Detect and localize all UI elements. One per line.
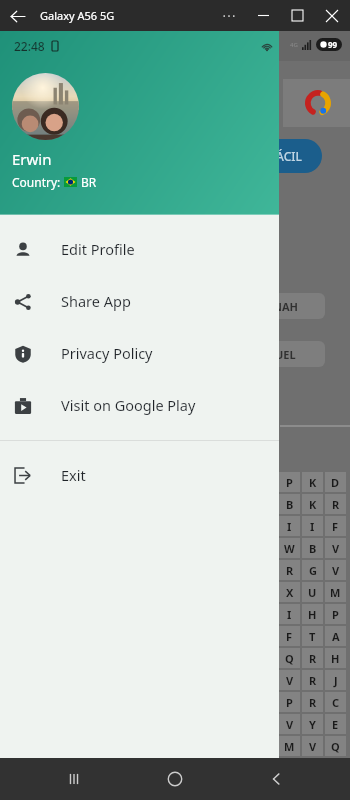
- staticText: 4G: [290, 41, 298, 49]
- button[interactable]: B: [279, 758, 300, 778]
- button[interactable]: Home: [147, 758, 203, 800]
- staticText: I: [287, 607, 292, 622]
- button[interactable]: H: [325, 648, 346, 668]
- button[interactable]: M: [325, 582, 346, 602]
- staticText: H: [331, 651, 340, 666]
- button[interactable]: Y: [302, 714, 323, 734]
- button[interactable]: V: [279, 714, 300, 734]
- staticText: B: [309, 541, 317, 556]
- button[interactable]: M: [279, 736, 300, 756]
- button[interactable]: [283, 79, 350, 127]
- button[interactable]: A: [325, 626, 346, 646]
- button[interactable]: I: [279, 604, 300, 624]
- button[interactable]: B: [302, 538, 323, 558]
- button[interactable]: UEL: [245, 341, 325, 367]
- button[interactable]: B: [279, 494, 300, 514]
- button[interactable]: Minimize: [246, 0, 280, 31]
- staticText: T: [309, 629, 316, 644]
- button[interactable]: K: [302, 472, 323, 492]
- button[interactable]: T: [302, 626, 323, 646]
- staticText: M: [284, 739, 295, 754]
- button[interactable]: Share App: [0, 275, 279, 327]
- staticText: Share App: [61, 291, 131, 311]
- staticText: P: [332, 607, 339, 622]
- button[interactable]: C: [325, 692, 346, 712]
- button[interactable]: R: [279, 560, 300, 580]
- button[interactable]: Edit Profile: [0, 223, 279, 275]
- staticText: G: [309, 563, 317, 578]
- staticText: R: [332, 497, 340, 512]
- staticText: 99: [328, 39, 338, 50]
- staticText: Q: [285, 651, 294, 666]
- button[interactable]: R: [325, 494, 346, 514]
- button[interactable]: E: [325, 714, 346, 734]
- button[interactable]: NAH: [245, 293, 325, 319]
- staticText: C: [332, 695, 340, 710]
- button[interactable]: Close: [314, 0, 350, 31]
- button[interactable]: I: [279, 516, 300, 536]
- button[interactable]: V: [302, 736, 323, 756]
- button[interactable]: R: [302, 692, 323, 712]
- staticText: NAH: [273, 299, 298, 314]
- button[interactable]: Visit on Google Play: [0, 379, 279, 431]
- button[interactable]: K: [302, 494, 323, 514]
- button[interactable]: H: [302, 604, 323, 624]
- staticText: A: [332, 629, 340, 644]
- staticText: BR: [81, 174, 97, 190]
- button[interactable]: Back: [249, 758, 305, 800]
- button[interactable]: F: [325, 516, 346, 536]
- staticText: Erwin: [12, 149, 52, 169]
- button[interactable]: Q: [325, 736, 346, 756]
- button[interactable]: Exit: [0, 449, 279, 501]
- button[interactable]: X: [279, 582, 300, 602]
- button[interactable]: Q: [279, 648, 300, 668]
- button[interactable]: V: [325, 538, 346, 558]
- button[interactable]: P: [279, 472, 300, 492]
- staticText: V: [332, 541, 340, 556]
- button[interactable]: Recents: [46, 758, 102, 800]
- staticText: FÁCIL: [270, 148, 302, 164]
- staticText: Exit: [61, 465, 86, 485]
- staticText: Q: [331, 739, 340, 754]
- staticText: Country:: [12, 174, 64, 190]
- button[interactable]: P: [279, 692, 300, 712]
- button[interactable]: F: [279, 626, 300, 646]
- button[interactable]: W: [279, 538, 300, 558]
- staticText: V: [286, 717, 294, 732]
- button[interactable]: G: [302, 560, 323, 580]
- button[interactable]: More options: [212, 0, 246, 31]
- staticText: R: [309, 673, 317, 688]
- button[interactable]: V: [279, 670, 300, 690]
- staticText: Galaxy A56 5G: [40, 8, 115, 23]
- staticText: M: [330, 585, 341, 600]
- button[interactable]: Maximize: [280, 0, 314, 31]
- staticText: I: [287, 519, 292, 534]
- button[interactable]: FÁCIL: [250, 139, 322, 173]
- staticText: V: [286, 673, 294, 688]
- staticText: X: [286, 585, 294, 600]
- staticText: P: [286, 695, 293, 710]
- staticText: F: [332, 519, 339, 534]
- staticText: UEL: [275, 347, 296, 362]
- button[interactable]: D: [325, 472, 346, 492]
- button[interactable]: K: [279, 780, 300, 800]
- staticText: I: [310, 519, 315, 534]
- staticText: V: [332, 563, 340, 578]
- button[interactable]: U: [302, 582, 323, 602]
- button[interactable]: P: [325, 604, 346, 624]
- button[interactable]: Back: [2, 1, 32, 31]
- button[interactable]: V: [325, 560, 346, 580]
- button[interactable]: Privacy Policy: [0, 327, 279, 379]
- button[interactable]: J: [325, 670, 346, 690]
- button[interactable]: R: [302, 670, 323, 690]
- button[interactable]: I: [302, 516, 323, 536]
- button[interactable]: R: [302, 648, 323, 668]
- staticText: F: [286, 629, 293, 644]
